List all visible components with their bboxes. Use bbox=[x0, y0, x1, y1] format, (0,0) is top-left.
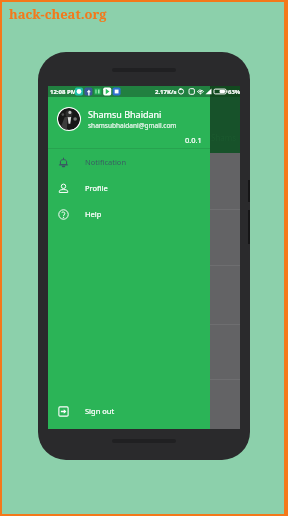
staticText: Shamsu Bhaidani bbox=[88, 108, 162, 120]
button[interactable]: Sign out bbox=[48, 398, 210, 424]
staticText: shamsubhaidani@gmail.com bbox=[88, 121, 177, 130]
staticText: 63% bbox=[228, 88, 241, 96]
staticText: 0.0.1 bbox=[185, 135, 202, 145]
staticText: Profile bbox=[85, 183, 108, 193]
staticText: 12:08 PM bbox=[50, 88, 77, 96]
staticText: hack-cheat.org bbox=[9, 5, 107, 23]
button[interactable]: Notification bbox=[48, 149, 210, 175]
staticText: 2.17K/s bbox=[155, 88, 177, 96]
staticText: Help bbox=[85, 209, 102, 219]
button[interactable]: Help bbox=[48, 201, 210, 227]
staticText: Sign out bbox=[85, 406, 115, 416]
staticText: Notification bbox=[85, 157, 127, 167]
button[interactable]: Profile bbox=[48, 175, 210, 201]
